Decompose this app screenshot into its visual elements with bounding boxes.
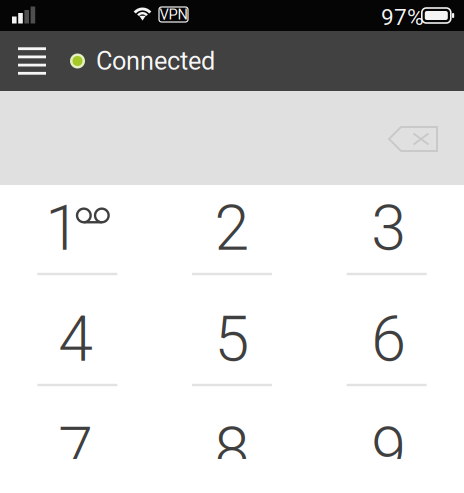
staticText: VPN [159,6,187,23]
staticText: 5 [214,302,249,376]
button[interactable]: 4 [0,296,155,407]
staticText: Connected [96,46,215,76]
button[interactable]: 2 [155,185,309,296]
button[interactable]: 6 [309,296,464,407]
button[interactable]: 7 [0,407,155,493]
staticText: 8 [214,413,249,487]
staticText: 97% [381,4,424,31]
button[interactable]: 1 [0,185,155,296]
staticText: 4 [58,302,93,376]
button[interactable]: 8 [155,407,309,493]
staticText: 9 [371,413,406,487]
button[interactable]: Menu [8,32,56,90]
button[interactable]: Delete [378,114,448,164]
button[interactable]: 9 [309,407,464,493]
staticText: 3 [371,191,406,265]
button[interactable]: 3 [309,185,464,296]
staticText: 7 [58,413,93,487]
staticText: 6 [371,302,406,376]
staticText: 1 [45,191,80,265]
button[interactable]: 5 [155,296,309,407]
staticText: 2 [214,191,249,265]
